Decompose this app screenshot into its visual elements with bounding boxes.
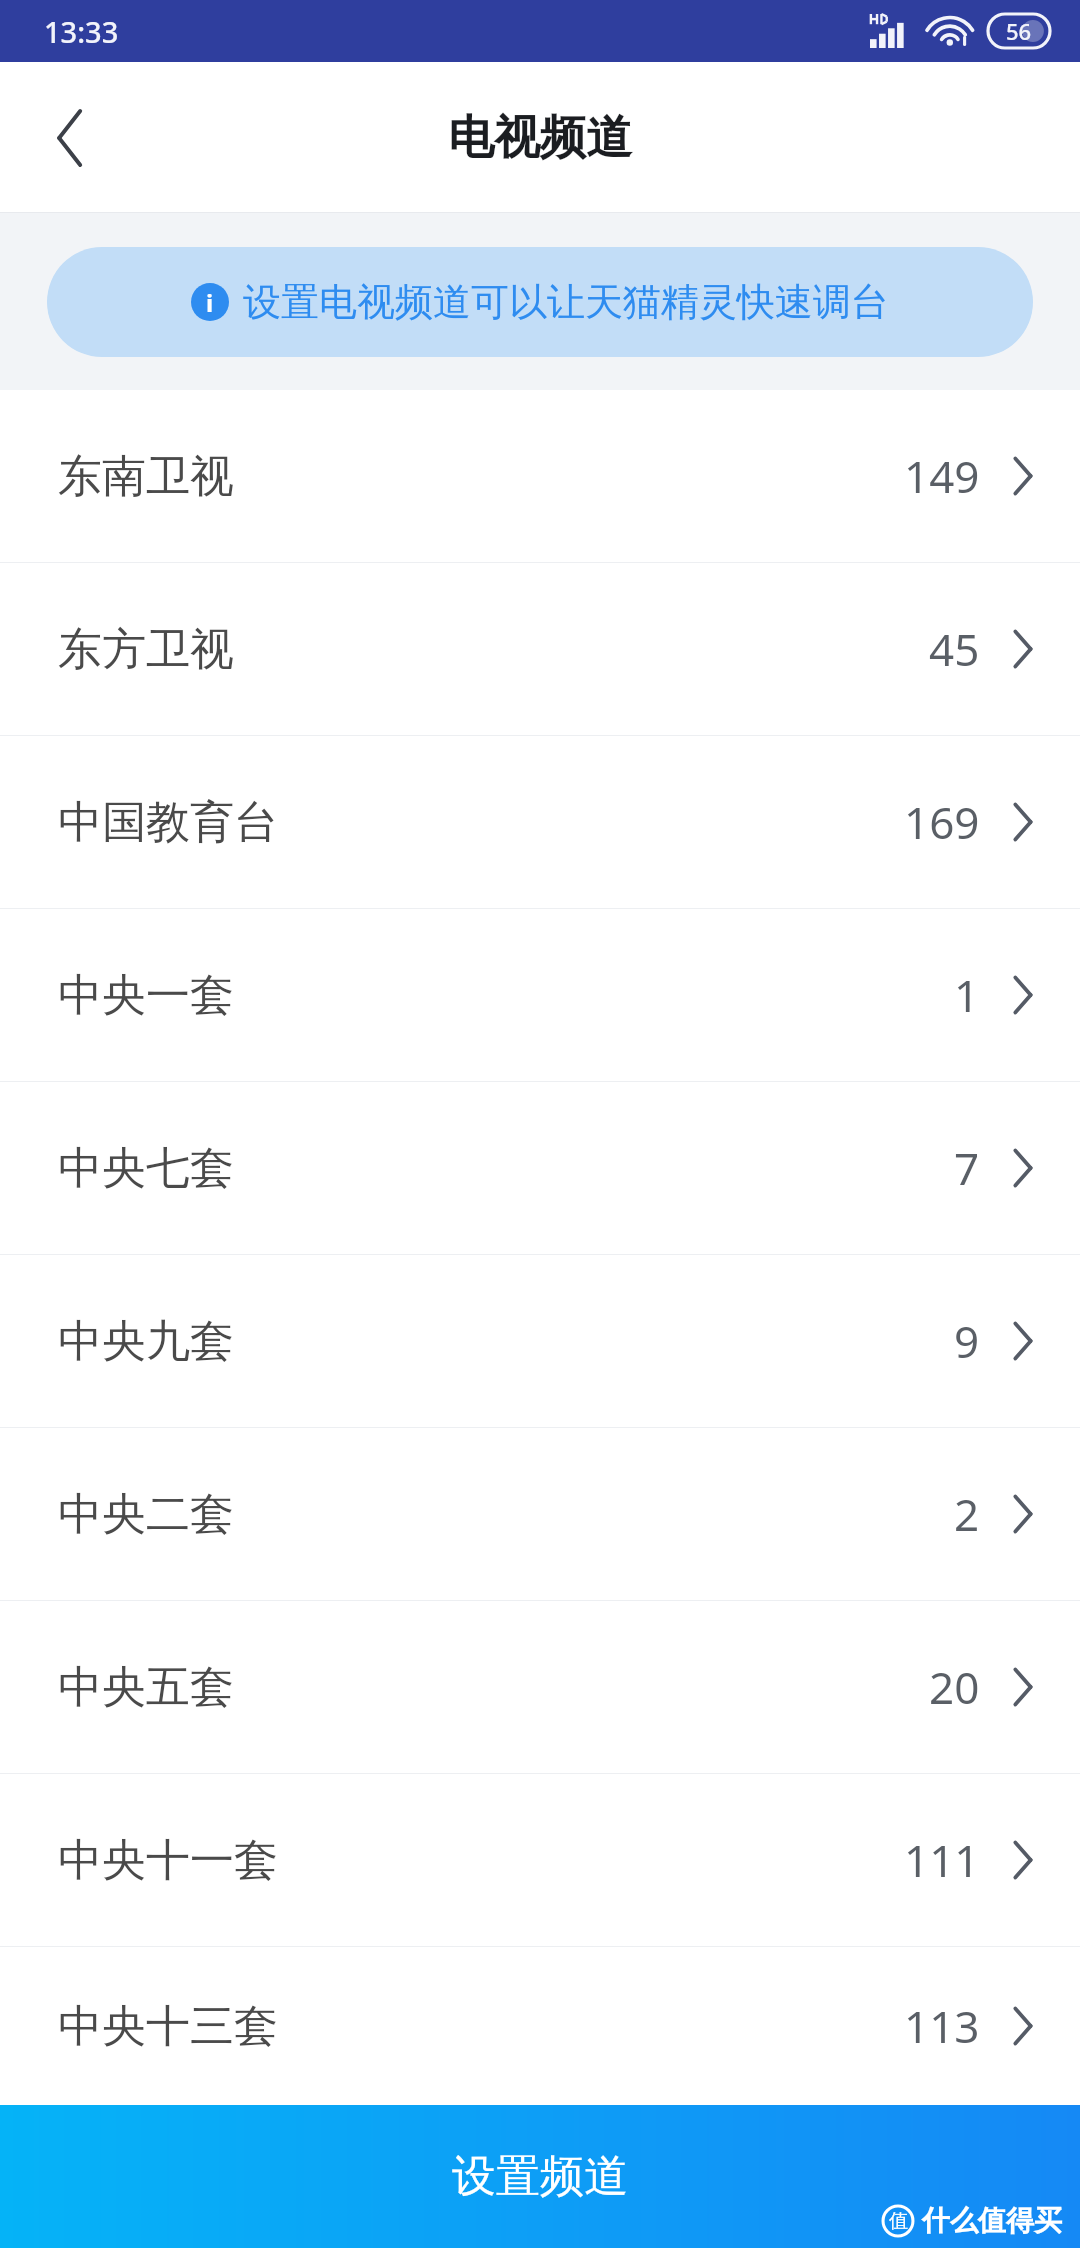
- button[interactable]: 中央二套: [0, 1428, 1080, 1600]
- button[interactable]: 设置频道: [0, 2105, 1080, 2248]
- staticText: 56: [1006, 16, 1032, 46]
- staticText: 2: [954, 1484, 980, 1544]
- staticText: 中央五套: [58, 1660, 234, 1715]
- staticText: 东南卫视: [58, 449, 234, 504]
- staticText: 东方卫视: [58, 622, 234, 677]
- button[interactable]: 中央十三套: [0, 1947, 1080, 2105]
- staticText: 中央七套: [58, 1141, 234, 1196]
- staticText: i: [206, 286, 214, 319]
- staticText: 149: [904, 446, 980, 506]
- staticText: 中央二套: [58, 1487, 234, 1542]
- staticText: 设置频道: [452, 2149, 628, 2204]
- staticText: 9: [954, 1311, 980, 1371]
- button[interactable]: 东南卫视: [0, 390, 1080, 562]
- staticText: 电视频道: [448, 109, 632, 167]
- staticText: 7: [954, 1138, 980, 1198]
- staticText: 1: [954, 965, 980, 1025]
- staticText: 中国教育台: [58, 795, 278, 850]
- staticText: 什么值得买: [922, 2203, 1062, 2238]
- staticText: 值: [889, 2209, 908, 2233]
- button[interactable]: 东方卫视: [0, 563, 1080, 735]
- staticText: 169: [904, 792, 980, 852]
- staticText: 45: [929, 619, 980, 679]
- staticText: 中央一套: [58, 968, 234, 1023]
- button[interactable]: 中央九套: [0, 1255, 1080, 1427]
- staticText: 中央十一套: [58, 1833, 278, 1888]
- staticText: 中央十三套: [58, 1999, 278, 2054]
- staticText: 设置电视频道可以让天猫精灵快速调台: [243, 278, 889, 326]
- button[interactable]: Back: [22, 90, 118, 186]
- staticText: 13:33: [44, 12, 119, 51]
- staticText: 113: [904, 1996, 980, 2056]
- button[interactable]: 中央十一套: [0, 1774, 1080, 1946]
- staticText: 中央九套: [58, 1314, 234, 1369]
- button[interactable]: 中央五套: [0, 1601, 1080, 1773]
- button[interactable]: i: [47, 247, 1033, 357]
- button[interactable]: 中国教育台: [0, 736, 1080, 908]
- staticText: 20: [929, 1657, 980, 1717]
- button[interactable]: 中央一套: [0, 909, 1080, 1081]
- staticText: 111: [904, 1830, 980, 1890]
- button[interactable]: 中央七套: [0, 1082, 1080, 1254]
